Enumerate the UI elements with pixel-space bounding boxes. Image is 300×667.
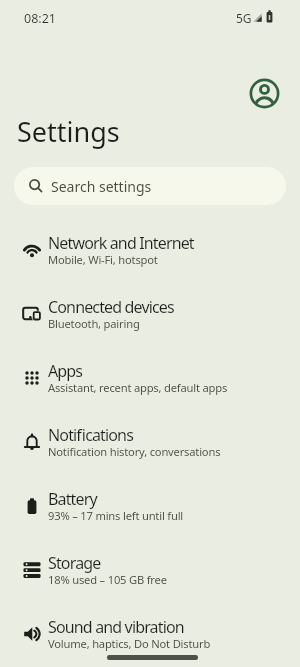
staticText: Connected devices [48, 296, 174, 318]
button[interactable]: Battery [0, 476, 300, 540]
staticText: Notifications [48, 424, 133, 446]
staticText: Search settings [51, 177, 152, 196]
button[interactable]: Apps [0, 348, 300, 412]
staticText: Sound and vibration [48, 616, 184, 638]
button[interactable]: Connected devices [0, 284, 300, 348]
button[interactable]: Search settings [14, 167, 286, 205]
staticText: Settings [17, 113, 120, 150]
staticText: Apps [48, 360, 83, 382]
staticText: Bluetooth, pairing [48, 316, 140, 331]
staticText: Network and Internet [48, 232, 194, 254]
button[interactable]: Network and Internet [0, 220, 300, 284]
staticText: Assistant, recent apps, default apps [48, 380, 228, 395]
staticText: 93% – 17 mins left until full [48, 508, 184, 523]
staticText: Storage [48, 552, 101, 574]
staticText: 08:21 [24, 10, 56, 27]
staticText: Notification history, conversations [48, 444, 221, 459]
staticText: Volume, haptics, Do Not Disturb [48, 636, 211, 651]
staticText: 5G [236, 10, 252, 26]
staticText: 18% used – 105 GB free [48, 572, 167, 587]
button[interactable]: Sound and vibration [0, 604, 300, 667]
button[interactable]: Notifications [0, 412, 300, 476]
staticText: Battery [48, 488, 97, 510]
button[interactable] [249, 78, 280, 109]
staticText: Mobile, Wi-Fi, hotspot [48, 252, 158, 267]
button[interactable]: Storage [0, 540, 300, 604]
